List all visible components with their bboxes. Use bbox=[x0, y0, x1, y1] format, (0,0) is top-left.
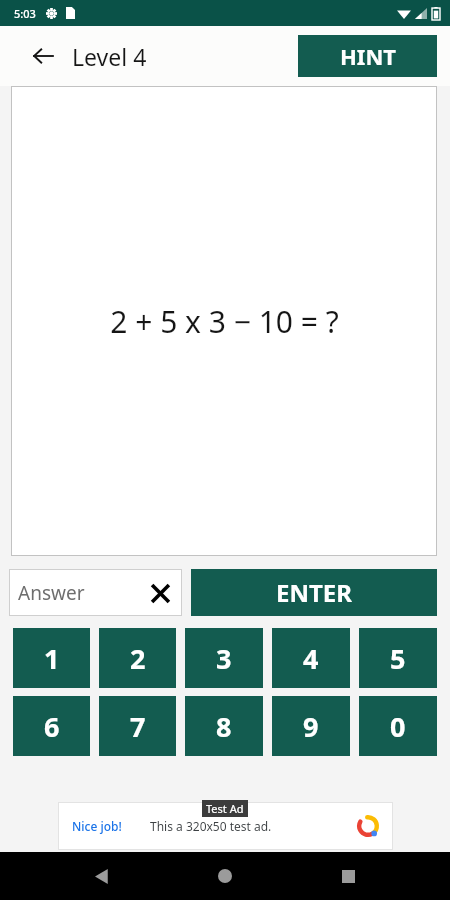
button[interactable]: 7 bbox=[99, 696, 176, 756]
button[interactable]: 0 bbox=[359, 696, 437, 756]
staticText: 5 bbox=[390, 640, 406, 677]
button[interactable]: HINT bbox=[298, 35, 437, 77]
button[interactable]: Answer bbox=[9, 569, 182, 616]
staticText: Nice job! bbox=[72, 818, 122, 834]
button[interactable]: 1 bbox=[13, 628, 90, 688]
button[interactable]: Back bbox=[81, 855, 123, 897]
staticText: 5:03 bbox=[14, 6, 36, 21]
staticText: 6 bbox=[44, 708, 60, 745]
staticText: 2 + 5 x 3 − 10 = ? bbox=[110, 301, 339, 342]
staticText: 3 bbox=[216, 640, 232, 677]
button[interactable]: Home bbox=[204, 855, 246, 897]
button[interactable]: Recents bbox=[327, 855, 369, 897]
staticText: HINT bbox=[340, 41, 396, 71]
staticText: Level 4 bbox=[72, 41, 147, 72]
staticText: 4 bbox=[303, 640, 319, 677]
staticText: 9 bbox=[303, 708, 319, 745]
staticText: 1 bbox=[44, 640, 60, 677]
staticText: Test Ad bbox=[206, 801, 244, 816]
staticText: 2 bbox=[130, 640, 146, 677]
staticText: Answer bbox=[18, 580, 85, 606]
button[interactable]: 5 bbox=[359, 628, 437, 688]
button[interactable]: 4 bbox=[272, 628, 350, 688]
button[interactable]: 2 bbox=[99, 628, 176, 688]
button[interactable]: 9 bbox=[272, 696, 350, 756]
button[interactable]: 3 bbox=[185, 628, 263, 688]
button[interactable]: Back bbox=[28, 41, 58, 71]
button[interactable]: 6 bbox=[13, 696, 90, 756]
staticText: 8 bbox=[216, 708, 232, 745]
staticText: 7 bbox=[130, 708, 146, 745]
staticText: ENTER bbox=[276, 576, 352, 609]
button[interactable]: ENTER bbox=[191, 569, 437, 616]
staticText: 0 bbox=[390, 708, 406, 745]
staticText: This a 320x50 test ad. bbox=[150, 818, 272, 834]
button[interactable]: 8 bbox=[185, 696, 263, 756]
other: Clear bbox=[146, 579, 174, 607]
button[interactable]: Nice job! bbox=[58, 802, 393, 850]
